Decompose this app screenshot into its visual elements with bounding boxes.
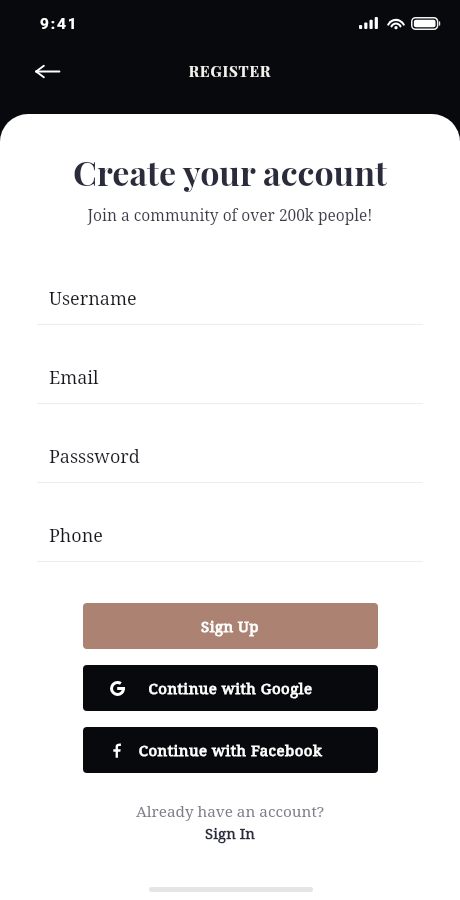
button[interactable]: Passsword <box>0 424 460 483</box>
staticText: Continue with Google <box>83 678 378 698</box>
staticText: Join a community of over 200k people! <box>0 204 460 225</box>
staticText: Already have an account? <box>0 801 460 822</box>
staticText: Continue with Facebook <box>83 740 378 760</box>
button[interactable]: Back <box>22 52 72 90</box>
button[interactable]: Continue with Facebook <box>83 727 378 773</box>
staticText: Create your account <box>0 149 460 194</box>
staticText: Sign Up <box>201 616 260 636</box>
staticText: 9:41 <box>40 15 79 33</box>
button[interactable]: Username <box>0 266 460 325</box>
staticText: REGISTER <box>0 61 460 81</box>
staticText: Email <box>49 365 99 390</box>
button[interactable]: Already have an account? <box>0 794 460 842</box>
button[interactable]: Sign Up <box>83 603 378 649</box>
staticText: Phone <box>49 523 103 548</box>
button[interactable]: Phone <box>0 503 460 562</box>
staticText: Passsword <box>49 444 140 469</box>
staticText: Sign In <box>0 823 460 843</box>
button[interactable]: Email <box>0 345 460 404</box>
staticText: Username <box>49 286 137 311</box>
button[interactable]: Continue with Google <box>83 665 378 711</box>
